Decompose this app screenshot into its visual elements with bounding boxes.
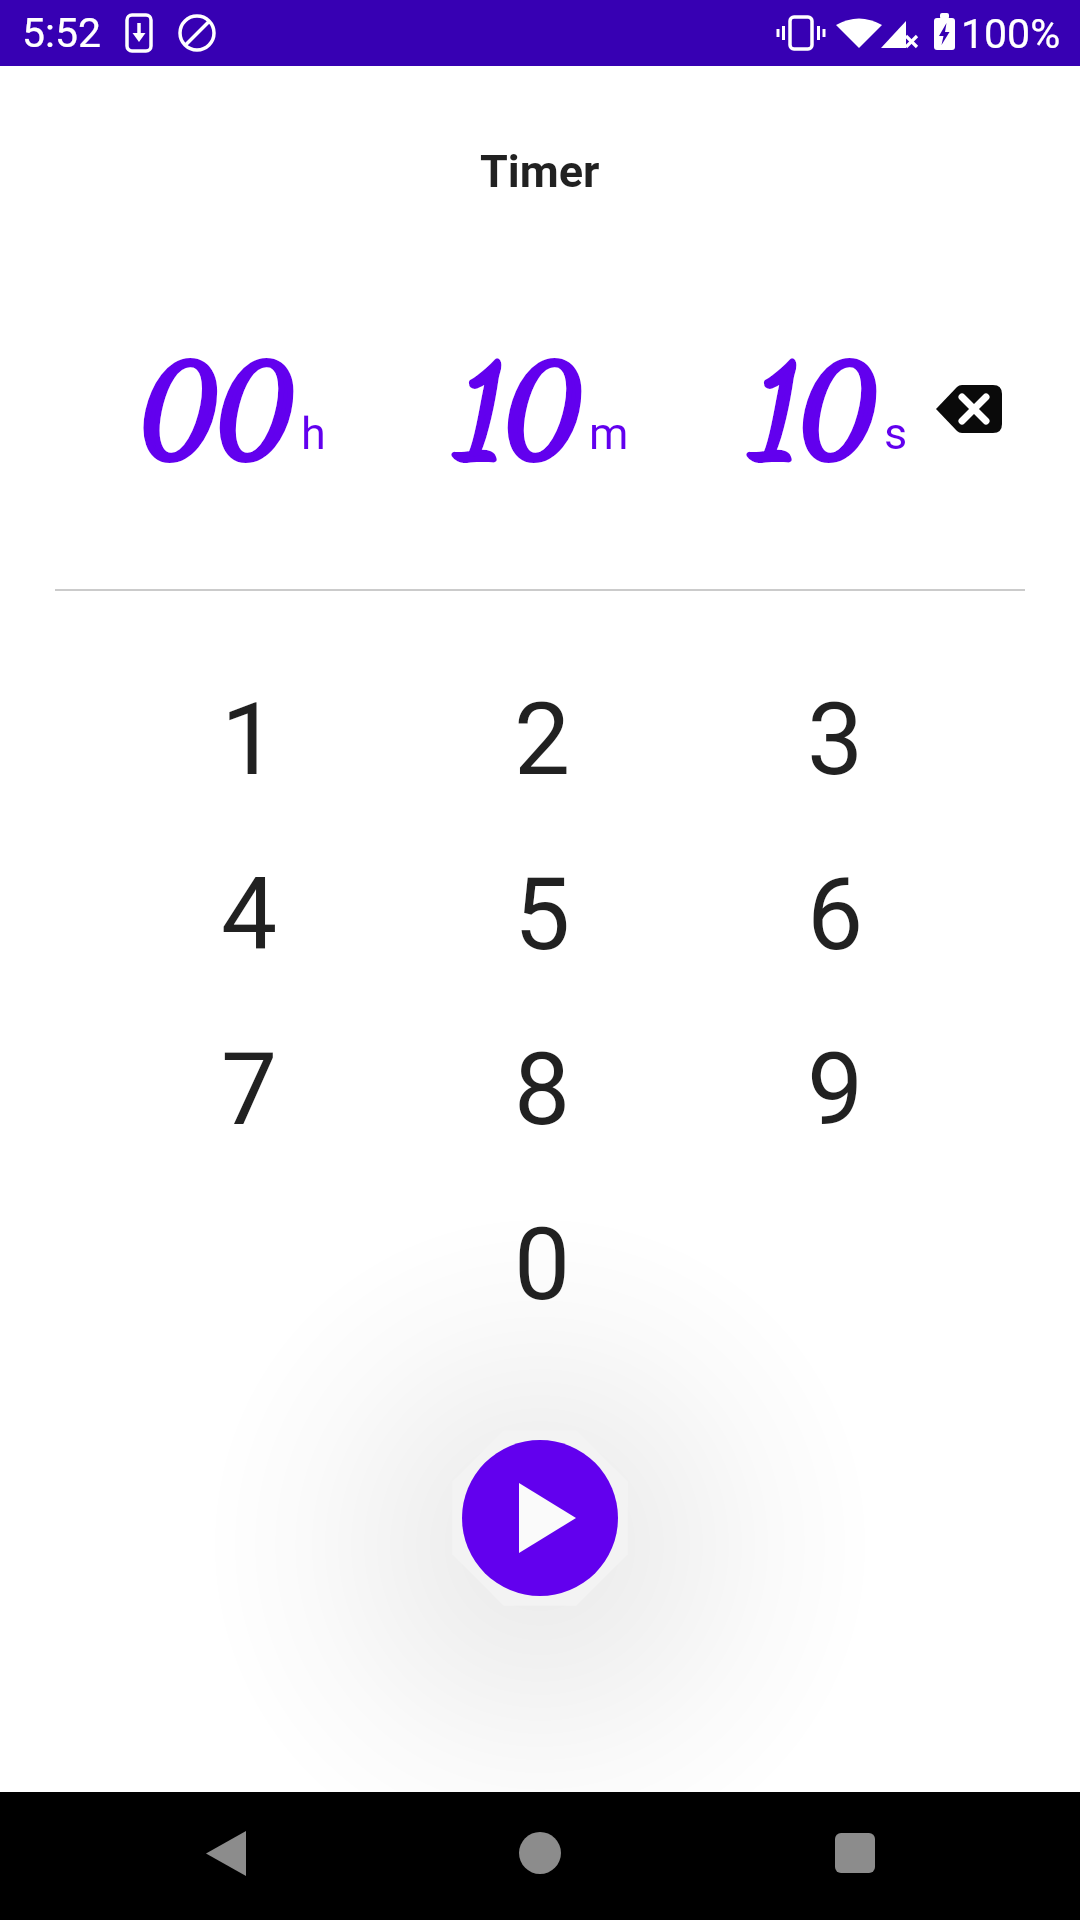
staticText: 7	[221, 1031, 278, 1148]
button[interactable]: 9	[689, 1002, 982, 1177]
staticText: h	[301, 407, 326, 460]
button[interactable]: 6	[689, 827, 982, 1002]
button[interactable]: 4	[103, 827, 396, 1002]
staticText: 00	[140, 338, 293, 483]
staticText: 10	[460, 338, 581, 483]
button[interactable]: 5	[396, 827, 689, 1002]
staticText: 00	[140, 338, 293, 483]
button[interactable]: 8	[396, 1002, 689, 1177]
staticText: 3	[807, 681, 864, 798]
staticText: 10	[460, 338, 581, 483]
button[interactable]: 7	[103, 1002, 396, 1177]
staticText: 5	[514, 856, 571, 973]
button[interactable]: 2	[396, 652, 689, 827]
button[interactable]	[462, 1440, 618, 1596]
staticText: 10	[755, 338, 876, 483]
button[interactable]	[925, 374, 1013, 444]
button[interactable]	[500, 1813, 580, 1893]
staticText: 10	[755, 338, 876, 483]
button[interactable]	[815, 1813, 895, 1893]
button[interactable]: 0	[396, 1177, 689, 1352]
staticText: 9	[807, 1031, 864, 1148]
staticText: 1	[221, 681, 278, 798]
button[interactable]: 3	[689, 652, 982, 827]
staticText: s	[884, 407, 908, 460]
staticText: m	[589, 407, 629, 460]
staticText: 8	[514, 1031, 571, 1148]
button[interactable]: 1	[103, 652, 396, 827]
staticText: 6	[807, 856, 864, 973]
staticText: 100%	[961, 10, 1061, 58]
staticText: 4	[221, 856, 278, 973]
staticText: 5:52	[22, 9, 102, 57]
staticText: 2	[514, 681, 571, 798]
staticText: 0	[514, 1206, 571, 1323]
staticText: Timer	[480, 145, 600, 198]
button[interactable]	[186, 1813, 266, 1893]
